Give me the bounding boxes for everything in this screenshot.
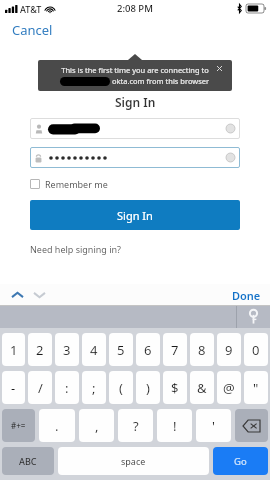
button[interactable]: Remember me xyxy=(30,178,270,190)
button[interactable]: 2 xyxy=(28,333,52,366)
staticText: AT&T xyxy=(20,3,42,15)
staticText: Need help signing in? xyxy=(30,243,121,255)
button[interactable]: 4 xyxy=(82,333,106,366)
staticText: 9 xyxy=(225,341,233,359)
staticText: 5 xyxy=(117,341,125,359)
staticText: ABC xyxy=(19,455,37,467)
button[interactable]: 8 xyxy=(190,333,214,366)
button[interactable]: 1 xyxy=(2,333,25,366)
staticText: ) xyxy=(146,379,150,397)
button[interactable]: ! xyxy=(157,409,192,442)
staticText: $ xyxy=(171,379,179,397)
staticText: 1 xyxy=(10,341,18,359)
button[interactable]: Passwords xyxy=(237,306,270,328)
button[interactable]: space xyxy=(58,447,209,475)
staticText: & xyxy=(197,379,207,397)
button[interactable]: @ xyxy=(217,371,241,404)
button[interactable]: Go xyxy=(213,447,268,475)
button[interactable]: - xyxy=(2,371,25,404)
button[interactable]: 0 xyxy=(244,333,268,366)
button[interactable]: Close xyxy=(214,63,224,73)
button[interactable]: ? xyxy=(118,409,153,442)
staticText: Sign In xyxy=(117,208,153,223)
button[interactable] xyxy=(30,147,240,168)
staticText: #+= xyxy=(11,420,26,431)
staticText: " xyxy=(253,379,259,397)
button[interactable]: & xyxy=(190,371,214,404)
staticText: - xyxy=(11,379,16,397)
button[interactable]: / xyxy=(28,371,52,404)
staticText: ? xyxy=(133,417,139,435)
staticText: Done xyxy=(232,288,261,303)
staticText: Go xyxy=(234,455,247,468)
staticText: ' xyxy=(212,417,215,435)
staticText: This is the first time you are connectin… xyxy=(61,65,209,75)
button[interactable]: , xyxy=(79,409,114,442)
staticText: 0 xyxy=(252,341,260,359)
button[interactable]: ) xyxy=(136,371,160,404)
button[interactable]: ' xyxy=(196,409,231,442)
staticText: / xyxy=(38,379,43,397)
staticText: 6 xyxy=(144,341,152,359)
staticText: 4 xyxy=(90,341,98,359)
button[interactable]: Cancel xyxy=(8,19,57,41)
button[interactable]: 9 xyxy=(217,333,241,366)
staticText: Sign In xyxy=(115,94,156,110)
button[interactable]: Next field xyxy=(30,286,48,304)
button[interactable]: " xyxy=(244,371,268,404)
button[interactable]: Backspace xyxy=(235,409,268,442)
button[interactable]: ABC xyxy=(2,447,54,475)
staticText: Remember me xyxy=(45,178,108,190)
staticText: ( xyxy=(119,379,123,397)
button[interactable]: 3 xyxy=(55,333,79,366)
button[interactable] xyxy=(30,118,240,139)
button[interactable]: : xyxy=(55,371,79,404)
staticText: space xyxy=(121,455,146,467)
staticText: okta.com from this browser xyxy=(110,76,210,86)
staticText: ; xyxy=(92,379,96,397)
button[interactable]: 6 xyxy=(136,333,160,366)
staticText: 7 xyxy=(171,341,179,359)
staticText: @ xyxy=(223,379,235,397)
button[interactable]: ( xyxy=(109,371,133,404)
staticText: 2:08 PM xyxy=(117,2,153,15)
button[interactable]: Done xyxy=(229,286,264,305)
button[interactable]: Sign In xyxy=(30,200,240,230)
button[interactable]: Previous field xyxy=(8,286,26,304)
staticText: : xyxy=(65,379,69,397)
button[interactable]: #+= xyxy=(2,409,35,442)
staticText: 2 xyxy=(36,341,44,359)
button[interactable]: $ xyxy=(163,371,187,404)
button[interactable]: 5 xyxy=(109,333,133,366)
staticText: Cancel xyxy=(12,21,53,39)
staticText: ! xyxy=(173,417,177,435)
button[interactable]: . xyxy=(39,409,75,442)
button[interactable]: Need help signing in? xyxy=(30,243,121,255)
staticText: 8 xyxy=(198,341,206,359)
staticText: , xyxy=(95,417,99,435)
staticText: 3 xyxy=(63,341,71,359)
button[interactable]: 7 xyxy=(163,333,187,366)
staticText: . xyxy=(55,417,59,435)
button[interactable]: ; xyxy=(82,371,106,404)
